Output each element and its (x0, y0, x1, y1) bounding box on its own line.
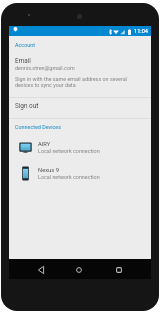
other: Notification (13, 27, 18, 32)
button[interactable]: Email (9, 57, 151, 88)
button[interactable]: Back (35, 262, 47, 277)
button[interactable]: Nexus 9 (9, 160, 151, 186)
button[interactable]: Sign out (9, 98, 151, 118)
staticText: AIRY (38, 141, 51, 148)
staticText: 11:04 (134, 28, 148, 35)
staticText: Local network connection (38, 148, 100, 154)
button[interactable]: AIRY (9, 134, 151, 160)
staticText: Account (15, 42, 35, 48)
staticText: Sign in with the same email address on s… (15, 76, 146, 88)
staticText: Local network connection (38, 174, 100, 180)
staticText: Sign out (15, 102, 39, 110)
staticText: Email (15, 57, 31, 65)
staticText: dennis.stren@gmail.com (15, 65, 75, 71)
staticText: Connected Devices (15, 124, 61, 130)
button[interactable]: Home (73, 262, 85, 277)
button[interactable]: Recent apps (113, 262, 125, 277)
staticText: Nexus 9 (38, 167, 59, 174)
